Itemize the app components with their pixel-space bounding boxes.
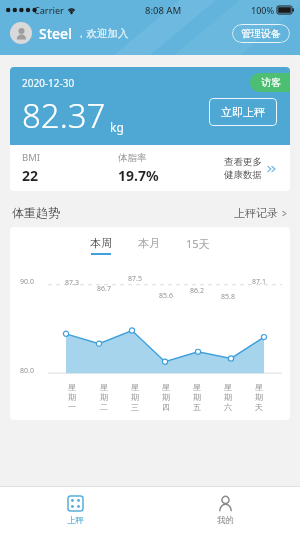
staticText: 星 xyxy=(68,382,76,392)
staticText: Steel xyxy=(39,24,72,43)
staticText: 一 xyxy=(68,402,76,412)
staticText: 期 xyxy=(162,392,170,402)
staticText: 86.2 xyxy=(190,286,204,296)
staticText: 15天 xyxy=(186,236,210,251)
staticText: kg xyxy=(110,119,124,135)
staticText: 期 xyxy=(255,392,263,402)
staticText: 87.3 xyxy=(65,278,79,288)
staticText: 体重趋势 xyxy=(12,205,60,220)
staticText: 期 xyxy=(68,392,76,402)
staticText: 82.37 xyxy=(22,93,106,138)
staticText: 四 xyxy=(162,402,170,412)
staticText: 星 xyxy=(162,382,170,392)
staticText: 期 xyxy=(100,392,108,402)
staticText: 星 xyxy=(131,382,139,392)
staticText: 星 xyxy=(193,382,201,392)
button[interactable]: 管理设备 xyxy=(232,24,290,43)
staticText: 天 xyxy=(255,402,263,412)
staticText: ，欢迎加入 xyxy=(76,27,129,40)
button[interactable]: Profile xyxy=(10,22,32,44)
staticText: 87.5 xyxy=(128,274,142,284)
staticText: 期 xyxy=(131,392,139,402)
staticText: 星 xyxy=(100,382,108,392)
staticText: 100% xyxy=(251,4,275,16)
staticText: 19.7% xyxy=(118,166,159,185)
button[interactable]: 访客 xyxy=(250,73,290,92)
staticText: 期 xyxy=(224,392,232,402)
staticText: 访客 xyxy=(261,76,281,89)
staticText: 星 xyxy=(255,382,263,392)
button[interactable]: 上秤记录 xyxy=(234,206,288,220)
staticText: 期 xyxy=(193,392,201,402)
staticText: 上秤 xyxy=(67,515,84,526)
staticText: 立即上秤 xyxy=(221,105,265,119)
staticText: 87.1 xyxy=(252,277,266,287)
staticText: 查看更多 xyxy=(224,156,262,168)
staticText: 本月 xyxy=(138,236,160,250)
staticText: 90.0 xyxy=(20,277,34,287)
staticText: 本周 xyxy=(90,236,112,250)
button[interactable]: 立即上秤 xyxy=(209,98,277,126)
staticText: 六 xyxy=(224,402,232,412)
button[interactable]: 我的 xyxy=(150,487,300,533)
staticText: Carrier xyxy=(34,4,64,16)
staticText: 上秤记录 xyxy=(234,206,278,220)
staticText: BMI xyxy=(22,151,41,164)
staticText: 体脂率 xyxy=(118,152,147,164)
staticText: 2020-12-30 xyxy=(22,76,75,90)
staticText: 85.8 xyxy=(221,292,235,302)
staticText: 二 xyxy=(100,402,108,412)
staticText: 我的 xyxy=(217,515,234,526)
staticText: 86.7 xyxy=(97,284,111,294)
staticText: 三 xyxy=(131,402,139,412)
staticText: 星 xyxy=(224,382,232,392)
staticText: 管理设备 xyxy=(241,27,281,40)
staticText: 85.6 xyxy=(159,291,173,301)
staticText: 五 xyxy=(193,402,201,412)
staticText: 22 xyxy=(22,166,39,185)
button[interactable]: 15天 xyxy=(182,236,214,256)
staticText: 80.0 xyxy=(20,366,34,376)
button[interactable]: 本月 xyxy=(134,236,164,255)
staticText: 健康数据 xyxy=(224,169,262,181)
button[interactable]: 本周 xyxy=(86,236,116,255)
button[interactable]: 查看更多 xyxy=(224,156,278,181)
staticText: 8:08 AM xyxy=(145,4,182,17)
button[interactable]: 上秤 xyxy=(0,487,150,533)
